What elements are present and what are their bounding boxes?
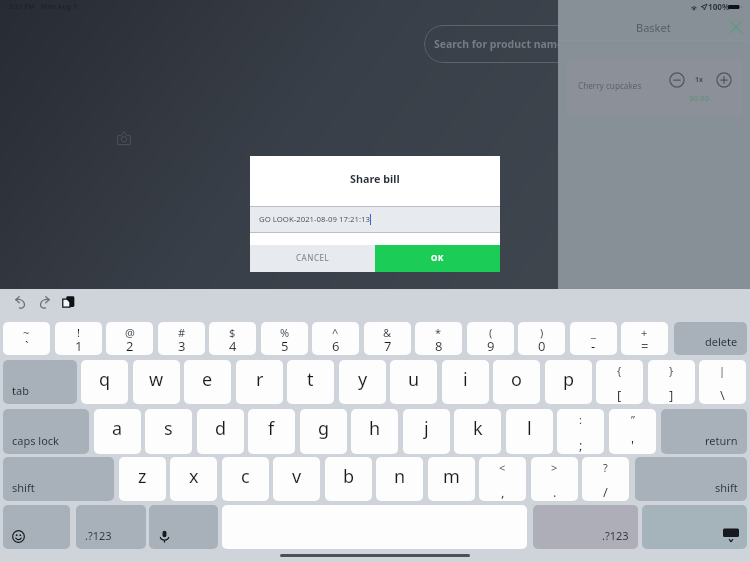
staticText: GO LOOK-2021-08-09 17:21:13 <box>259 214 370 225</box>
button[interactable]: h <box>351 409 398 454</box>
button[interactable]: Camera <box>117 131 131 145</box>
button[interactable]: Close basket <box>729 20 743 34</box>
button[interactable]: Undo <box>14 296 27 309</box>
button[interactable]: x <box>170 457 217 501</box>
button[interactable]: + <box>621 322 668 355</box>
button[interactable]: g <box>300 409 347 454</box>
button[interactable]: .?123 <box>533 505 638 549</box>
button[interactable]: $ <box>209 322 256 355</box>
staticText: 0 <box>538 337 546 355</box>
staticText: + <box>641 325 648 340</box>
button[interactable]: ^ <box>312 322 359 355</box>
button[interactable]: caps lock <box>3 409 89 454</box>
button[interactable]: shift <box>3 457 114 501</box>
button[interactable]: a <box>94 409 141 454</box>
staticText: 5:21 PM <box>9 2 35 11</box>
button[interactable]: Paste <box>62 295 75 308</box>
button[interactable]: Cherry cupcakes <box>567 59 743 116</box>
button[interactable]: d <box>197 409 244 454</box>
button[interactable]: Search for product name <box>424 25 639 63</box>
button[interactable]: o <box>493 360 540 404</box>
button[interactable]: : <box>557 409 604 454</box>
staticText: e <box>202 367 213 392</box>
button[interactable]: > <box>531 457 578 501</box>
staticText: ` <box>25 337 29 355</box>
button[interactable]: Decrease quantity <box>669 72 685 88</box>
button[interactable]: n <box>376 457 423 501</box>
staticText: 90.00 <box>689 93 709 104</box>
button[interactable]: @ <box>106 322 153 355</box>
button[interactable]: & <box>364 322 411 355</box>
button[interactable]: GO LOOK-2021-08-09 17:21:13 <box>250 207 500 232</box>
staticText: 1 <box>75 337 83 355</box>
button[interactable]: y <box>339 360 386 404</box>
button[interactable]: | <box>699 360 746 404</box>
button[interactable]: b <box>325 457 372 501</box>
staticText: delete <box>705 334 738 349</box>
staticText: r <box>256 367 264 392</box>
button[interactable]: ) <box>518 322 565 355</box>
staticText: } <box>669 363 674 378</box>
button[interactable]: < <box>479 457 526 501</box>
button[interactable]: f <box>248 409 295 454</box>
button[interactable]: c <box>222 457 269 501</box>
staticText: 100% <box>708 1 730 12</box>
button[interactable]: delete <box>674 322 747 355</box>
staticText: b <box>343 464 355 489</box>
staticText: Share bill <box>350 171 400 186</box>
staticText: ~ <box>23 325 30 340</box>
button[interactable]: .?123 <box>76 505 146 549</box>
staticText: 7 <box>384 337 392 355</box>
button[interactable]: r <box>236 360 283 404</box>
button[interactable]: _ <box>570 322 617 355</box>
button[interactable]: j <box>403 409 450 454</box>
staticText: Basket <box>636 20 671 35</box>
staticText: 2 <box>126 337 134 355</box>
staticText: { <box>617 363 622 378</box>
button[interactable]: s <box>145 409 192 454</box>
button[interactable]: ( <box>467 322 514 355</box>
button[interactable]: * <box>415 322 462 355</box>
button[interactable]: p <box>545 360 592 404</box>
button[interactable]: i <box>442 360 489 404</box>
staticText: k <box>473 416 483 441</box>
button[interactable]: v <box>273 457 320 501</box>
button[interactable]: Dictation <box>149 505 218 549</box>
button[interactable]: Hide keyboard <box>642 505 747 549</box>
button[interactable]: } <box>648 360 695 404</box>
button[interactable]: m <box>428 457 475 501</box>
button[interactable]: % <box>261 322 308 355</box>
button[interactable]: t <box>287 360 334 404</box>
button[interactable]: w <box>133 360 180 404</box>
button[interactable]: q <box>81 360 128 404</box>
button[interactable]: z <box>119 457 166 501</box>
button[interactable]: Emoji <box>3 505 70 549</box>
button[interactable]: k <box>454 409 501 454</box>
button[interactable]: tab <box>3 360 77 404</box>
staticText: | <box>719 363 726 378</box>
button[interactable]: CANCEL <box>250 245 375 272</box>
button[interactable]: return <box>661 409 747 454</box>
staticText: < <box>499 460 506 475</box>
button[interactable]: ! <box>55 322 102 355</box>
staticText: d <box>215 416 227 441</box>
staticText: v <box>292 464 302 489</box>
staticText: ] <box>669 386 674 404</box>
button[interactable]: ~ <box>3 322 50 355</box>
staticText: a <box>112 416 123 441</box>
staticText: Cherry cupcakes <box>578 80 642 91</box>
button[interactable]: # <box>158 322 205 355</box>
button[interactable]: Increase quantity <box>716 72 732 88</box>
button[interactable]: l <box>506 409 553 454</box>
button[interactable]: Redo <box>38 296 51 309</box>
button[interactable]: { <box>596 360 643 404</box>
button[interactable]: ” <box>609 409 656 454</box>
staticText: h <box>369 416 381 441</box>
button[interactable]: u <box>390 360 437 404</box>
button[interactable]: ? <box>582 457 629 501</box>
staticText: > <box>551 460 558 475</box>
button[interactable]: e <box>184 360 231 404</box>
button[interactable]: shift <box>635 457 747 501</box>
button[interactable]: OK <box>375 245 500 272</box>
